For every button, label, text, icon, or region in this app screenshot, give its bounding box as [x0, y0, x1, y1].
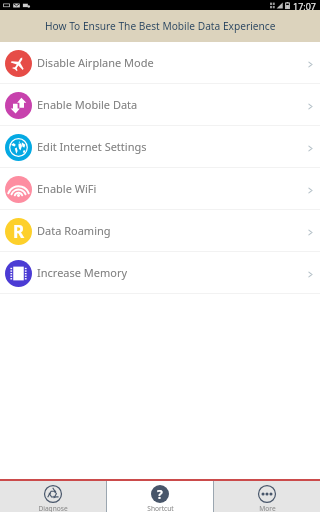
button[interactable]: ?	[107, 481, 213, 512]
staticText: Diagnose	[38, 504, 68, 512]
button[interactable]: Enable Mobile Data	[0, 84, 320, 126]
staticText: ?	[157, 486, 163, 502]
staticText: Enable WiFi	[37, 181, 97, 196]
staticText: More	[259, 504, 276, 512]
staticText: Shortcut	[147, 504, 174, 512]
button[interactable]: Disable Airplane Mode	[0, 42, 320, 84]
staticText: Edit Internet Settings	[37, 139, 147, 154]
button[interactable]: Diagnose	[0, 481, 106, 512]
button[interactable]: Increase Memory	[0, 252, 320, 294]
staticText: Enable Mobile Data	[37, 97, 138, 112]
staticText: Data Roaming	[37, 223, 111, 238]
button[interactable]: Edit Internet Settings	[0, 126, 320, 168]
staticText: R	[13, 220, 25, 243]
button[interactable]: Enable WiFi	[0, 168, 320, 210]
staticText: 17:07	[293, 0, 317, 10]
button[interactable]: R	[0, 210, 320, 252]
staticText: Disable Airplane Mode	[37, 55, 154, 70]
staticText: How To Ensure The Best Mobile Data Exper…	[45, 19, 276, 33]
button[interactable]: More	[214, 481, 320, 512]
staticText: Increase Memory	[37, 265, 128, 280]
